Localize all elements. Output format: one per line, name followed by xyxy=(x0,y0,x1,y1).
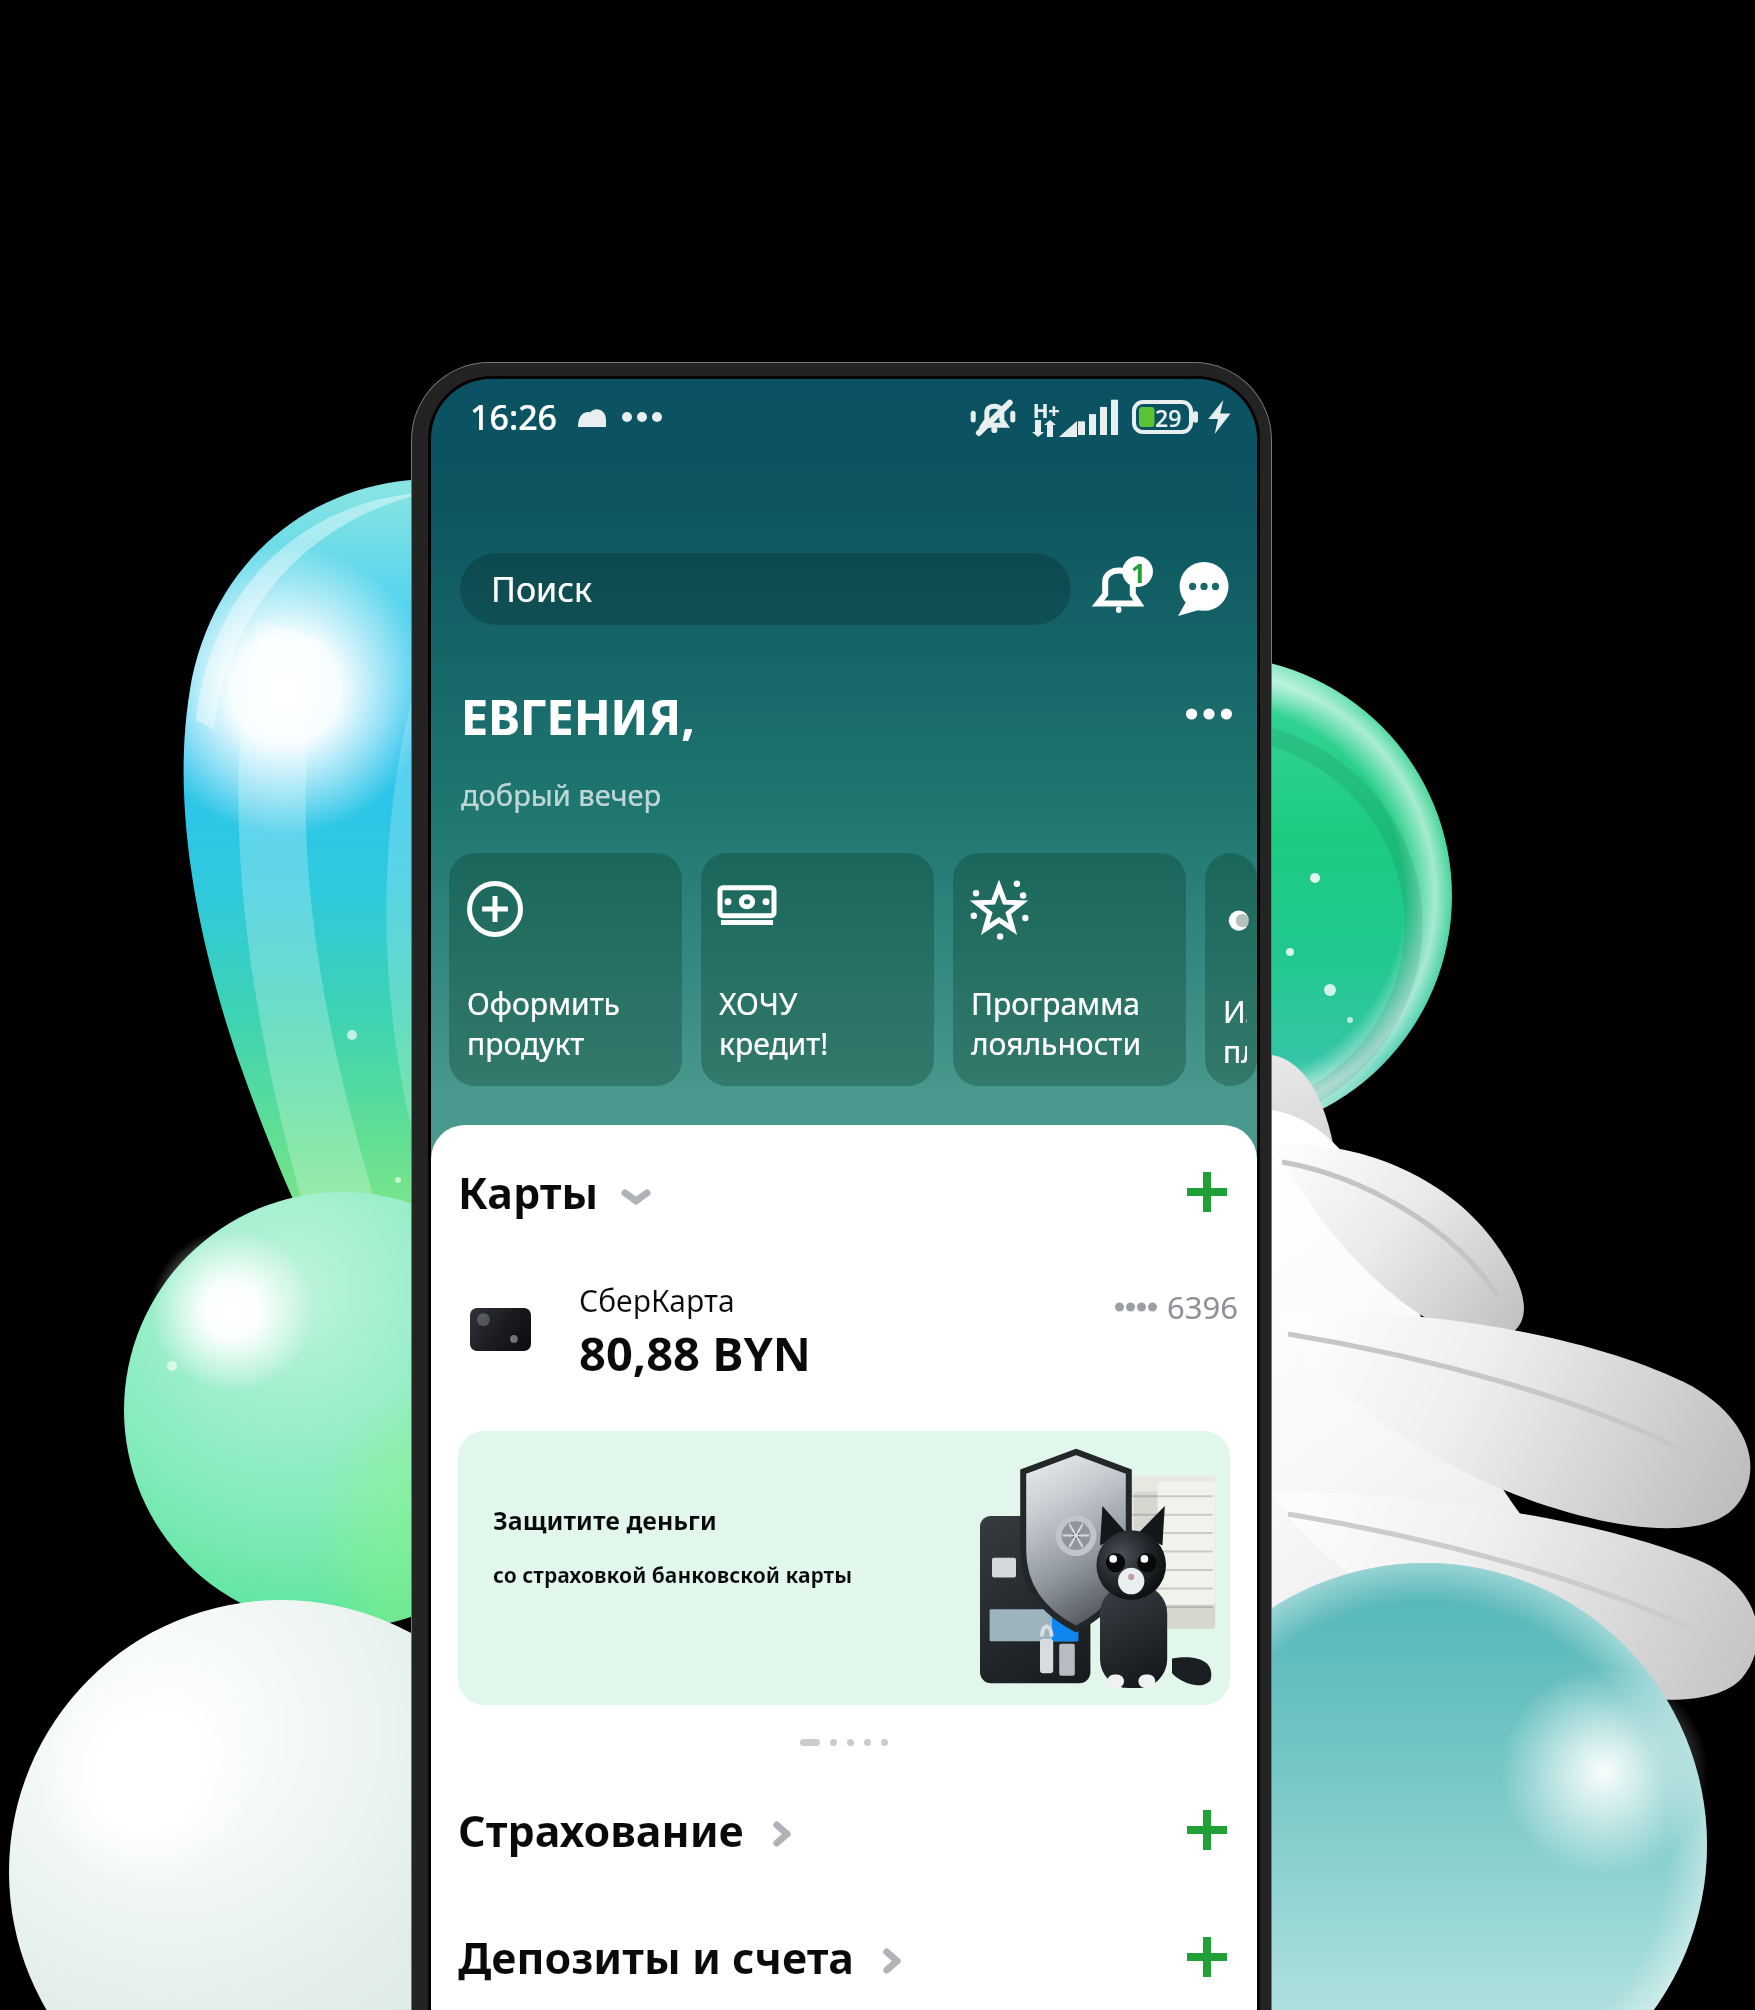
staticText: Оформить продукт xyxy=(467,983,620,1064)
button[interactable]: Add xyxy=(1179,1802,1235,1858)
staticText: Программа лояльности xyxy=(971,983,1142,1064)
button[interactable]: Add xyxy=(1179,1929,1235,1985)
button[interactable]: Add xyxy=(1179,1164,1235,1220)
button[interactable]: ХОЧУ кредит! xyxy=(701,853,934,1086)
staticText: Депозиты и счета xyxy=(458,1928,854,1987)
staticText: СберКарта xyxy=(579,1280,735,1321)
button[interactable]: Программа лояльности xyxy=(953,853,1186,1086)
staticText: Защитите деньги xyxy=(493,1503,717,1537)
staticText: 80,88 BYN xyxy=(579,1321,812,1385)
staticText: 6396 xyxy=(1167,1286,1238,1328)
button[interactable]: Поиск xyxy=(460,553,1071,625)
staticText: 1 xyxy=(1131,555,1146,590)
button[interactable]: Chat xyxy=(1169,552,1237,626)
button[interactable]: Карты xyxy=(431,1150,1257,1234)
staticText: добрый вечер xyxy=(461,775,662,814)
staticText: Страхование xyxy=(458,1801,744,1860)
staticText: ЕВГЕНИЯ, xyxy=(461,684,695,749)
staticText: ХОЧУ кредит! xyxy=(719,983,829,1064)
staticText: 16:26 xyxy=(470,394,558,440)
staticText: Поиск xyxy=(491,566,593,612)
staticText: 29 xyxy=(1155,402,1182,433)
staticText: H+ xyxy=(1033,397,1060,424)
button[interactable]: More options xyxy=(1181,686,1237,742)
button[interactable]: Изменить платёж xyxy=(1205,853,1257,1086)
staticText: со страховкой банковской карты xyxy=(493,1561,853,1590)
button[interactable]: Страхование xyxy=(431,1788,1257,1872)
button[interactable]: СберКарта xyxy=(431,1268,1257,1378)
button[interactable]: Защитите деньги xyxy=(458,1431,1230,1705)
staticText: Изменить платёж xyxy=(1223,991,1247,1064)
staticText: Карты xyxy=(458,1163,599,1222)
button[interactable]: Оформить продукт xyxy=(449,853,682,1086)
button[interactable]: Депозиты и счета xyxy=(431,1915,1257,1999)
button[interactable]: Notifications xyxy=(1085,552,1159,626)
